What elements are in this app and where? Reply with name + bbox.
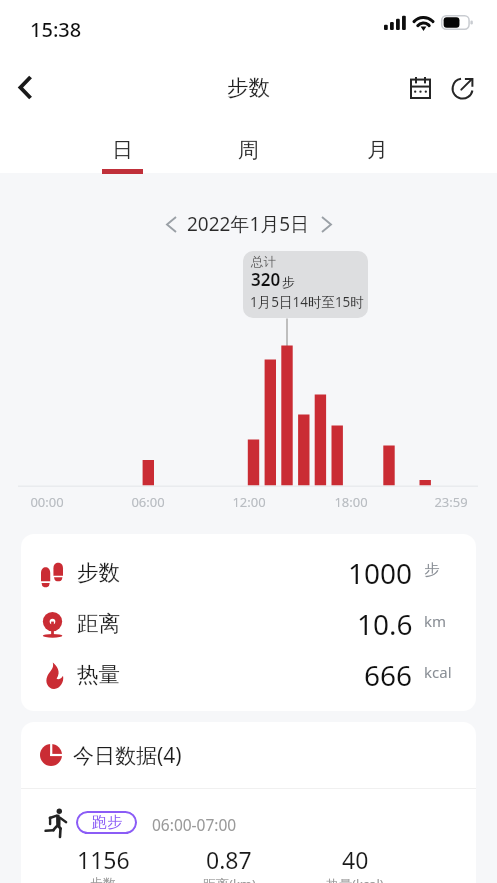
button[interactable]: Next day [310,208,342,240]
staticText: 月 [367,137,388,163]
staticText: 步数 [90,875,116,883]
button[interactable]: Back [2,64,49,111]
button[interactable]: 步数 [21,547,476,598]
button[interactable]: 热量 [21,649,476,700]
button[interactable]: Calendar [397,64,444,111]
staticText: 40 [342,844,369,875]
staticText: 热量 [77,661,120,688]
staticText: 10.6 [357,605,413,643]
staticText: 00:00 [17,493,77,511]
staticText: 步数 [227,74,270,101]
staticText: kcal [424,662,452,682]
button[interactable]: 日 [90,128,154,174]
staticText: 总计 [251,254,276,270]
button[interactable]: Previous day [155,208,187,240]
staticText: 热量(kcal) [326,875,384,883]
staticText: 距离 [77,610,120,637]
staticText: 步数 [77,559,120,586]
staticText: 距离(km) [203,875,256,883]
staticText: 06:00 [118,493,178,511]
staticText: km [424,611,447,631]
staticText: 步 [424,560,440,580]
staticText: 23:59 [421,493,481,511]
button[interactable]: Share [438,64,485,111]
staticText: 1月5日14时至15时 [250,293,364,311]
staticText: 320 [251,268,281,291]
staticText: 2022年1月5日 [187,211,310,237]
staticText: 666 [364,656,413,694]
button[interactable]: 距离 [21,598,476,649]
staticText: 06:00-07:00 [152,814,237,835]
staticText: 15:38 [30,16,82,43]
button[interactable]: 今日数据(4) [21,722,476,788]
staticText: 1000 [348,554,413,592]
staticText: 跑步 [92,813,122,832]
staticText: 今日数据(4) [73,741,182,770]
staticText: 步 [282,274,295,290]
staticText: 日 [112,137,133,163]
staticText: 1156 [77,844,130,875]
staticText: 18:00 [321,493,381,511]
staticText: 0.87 [206,844,252,875]
button[interactable]: 周 [216,128,280,174]
staticText: 周 [238,137,259,163]
staticText: 12:00 [219,493,279,511]
button[interactable]: 月 [345,128,409,174]
